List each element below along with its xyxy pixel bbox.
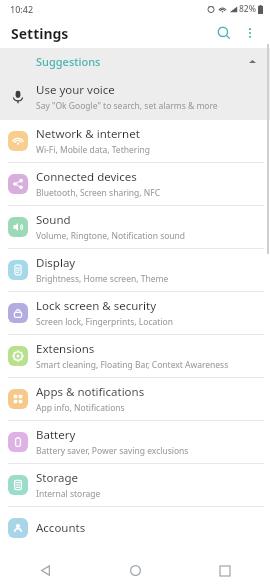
staticText: Extensions bbox=[36, 341, 95, 357]
button[interactable]: Recents bbox=[180, 556, 270, 585]
button[interactable]: Back bbox=[0, 556, 90, 585]
button[interactable]: Network & internet bbox=[0, 120, 270, 162]
staticText: 10:42 bbox=[10, 3, 34, 15]
button[interactable]: Battery bbox=[0, 421, 270, 463]
staticText: Screen lock, Fingerprints, Location bbox=[36, 316, 173, 328]
button[interactable]: Extensions bbox=[0, 335, 270, 377]
button[interactable]: Storage bbox=[0, 464, 270, 506]
staticText: Volume, Ringtone, Notification sound bbox=[36, 230, 186, 242]
staticText: Lock screen & security bbox=[36, 298, 157, 314]
staticText: Connected devices bbox=[36, 169, 137, 185]
button[interactable]: Accounts bbox=[0, 507, 270, 549]
button[interactable]: Connected devices bbox=[0, 163, 270, 205]
button[interactable]: Home bbox=[90, 556, 180, 585]
staticText: Display bbox=[36, 255, 76, 271]
staticText: App info, Notifications bbox=[36, 402, 125, 414]
button[interactable]: Display bbox=[0, 249, 270, 291]
button[interactable]: Apps & notifications bbox=[0, 378, 270, 420]
staticText: Suggestions bbox=[36, 54, 101, 69]
staticText: Accounts bbox=[36, 520, 86, 536]
other: Collapse bbox=[244, 53, 260, 69]
staticText: Battery saver, Power saving exclusions bbox=[36, 445, 189, 457]
staticText: Settings bbox=[11, 24, 69, 43]
staticText: Say "Ok Google" to search, set alarms & … bbox=[36, 100, 218, 112]
button[interactable]: Suggestions bbox=[0, 48, 270, 74]
staticText: Bluetooth, Screen sharing, NFC bbox=[36, 187, 161, 199]
staticText: Brightness, Home screen, Theme bbox=[36, 273, 169, 285]
staticText: Internal storage bbox=[36, 488, 101, 500]
button[interactable]: Sound bbox=[0, 206, 270, 248]
staticText: Battery bbox=[36, 427, 76, 443]
staticText: Network & internet bbox=[36, 126, 140, 142]
staticText: Apps & notifications bbox=[36, 384, 145, 400]
staticText: Smart cleaning, Floating Bar, Context Aw… bbox=[36, 359, 229, 371]
staticText: Wi-Fi, Mobile data, Tethering bbox=[36, 144, 150, 156]
button[interactable]: Search bbox=[212, 21, 236, 45]
staticText: Use your voice bbox=[36, 82, 115, 98]
staticText: 82% bbox=[239, 3, 256, 15]
button[interactable]: Use your voice bbox=[0, 74, 270, 120]
button[interactable]: More options bbox=[239, 22, 261, 44]
staticText: Sound bbox=[36, 212, 71, 228]
button[interactable]: Lock screen & security bbox=[0, 292, 270, 334]
staticText: Storage bbox=[36, 470, 78, 486]
